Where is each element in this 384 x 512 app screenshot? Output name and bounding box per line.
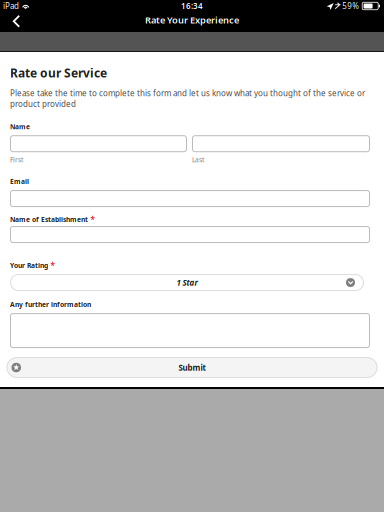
button[interactable]: Submit (6, 357, 377, 378)
staticText: Your Rating (10, 261, 48, 270)
staticText: 1 Star (176, 277, 197, 288)
button[interactable]: 1 Star (10, 274, 364, 291)
staticText: Rate Your Experience (145, 14, 239, 26)
staticText: Any further information (10, 300, 91, 309)
staticText: First (10, 155, 23, 164)
staticText: iPad (3, 1, 19, 11)
staticText: 16:34 (181, 1, 203, 11)
staticText: Name of Establishment (10, 215, 88, 224)
staticText: Please take the time to complete this fo… (10, 88, 365, 109)
staticText: Rate our Service (10, 65, 107, 81)
staticText: Submit (178, 362, 205, 373)
staticText: 59% (342, 1, 359, 11)
staticText: * (90, 214, 94, 225)
staticText: Email (10, 177, 29, 186)
button[interactable]: Back (0, 12, 31, 32)
staticText: Name (10, 122, 30, 131)
staticText: Last (192, 155, 204, 164)
staticText: * (50, 260, 54, 271)
